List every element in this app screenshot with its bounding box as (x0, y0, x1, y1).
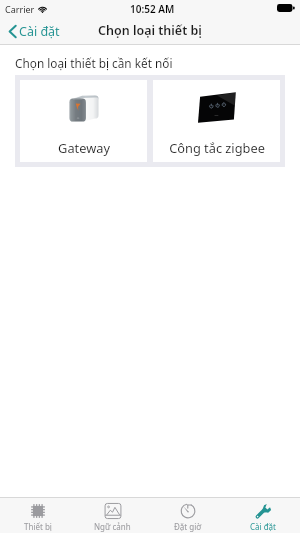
staticText: Ngữ cảnh (94, 521, 131, 532)
button[interactable]: Cài đặt (0, 20, 68, 43)
button[interactable]: Đặt giờ (150, 497, 225, 533)
staticText: 10:52 AM (130, 2, 175, 16)
button[interactable]: Cài đặt (225, 497, 300, 533)
staticText: Carrier (5, 3, 35, 15)
staticText: Đặt giờ (174, 521, 202, 532)
staticText: Chọn loại thiết bị cần kết nối (15, 55, 173, 71)
button[interactable]: Gateway (20, 80, 147, 162)
staticText: Thiết bị (24, 521, 52, 532)
button[interactable]: Thiết bị (0, 497, 75, 533)
staticText: Gateway (58, 139, 110, 156)
button[interactable]: Công tắc zigbee (153, 80, 280, 162)
staticText: Cài đặt (250, 521, 276, 532)
staticText: Công tắc zigbee (169, 139, 265, 156)
staticText: Cài đặt (19, 23, 60, 40)
staticText: Chọn loại thiết bị (98, 22, 202, 39)
button[interactable]: Ngữ cảnh (75, 497, 150, 533)
